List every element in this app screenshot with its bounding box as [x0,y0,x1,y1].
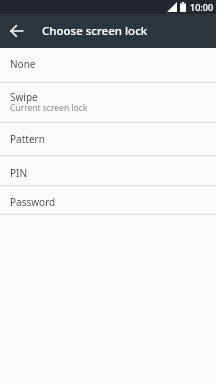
staticText: None [10,57,36,71]
button[interactable] [0,14,34,48]
button[interactable]: Password [0,186,216,214]
staticText: Swipe [10,90,38,104]
staticText: Current screen lock [10,102,88,114]
button[interactable]: PIN [0,156,216,185]
button[interactable]: Pattern [0,123,216,155]
button[interactable]: Swipe [0,83,216,122]
staticText: PIN [10,166,28,180]
staticText: Pattern [10,132,45,146]
button[interactable]: None [0,48,216,82]
staticText: Choose screen lock [42,23,148,39]
staticText: 10:00 [190,1,214,13]
staticText: Password [10,195,56,209]
